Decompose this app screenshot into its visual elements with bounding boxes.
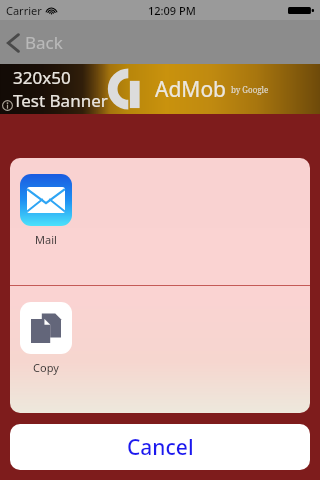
staticText: 12:09 PM bbox=[148, 3, 196, 18]
staticText: Back bbox=[25, 31, 63, 54]
button[interactable]: Cancel bbox=[10, 424, 310, 470]
button[interactable]: AdMob test banner advertisement bbox=[0, 64, 320, 114]
staticText: Copy bbox=[33, 360, 59, 375]
button[interactable]: Mail bbox=[10, 158, 310, 285]
staticText: Test Banner bbox=[13, 89, 108, 112]
staticText: Cancel bbox=[127, 433, 194, 462]
staticText: AdMob bbox=[155, 75, 227, 104]
staticText: Carrier bbox=[6, 3, 42, 18]
button[interactable]: Back bbox=[0, 25, 75, 60]
button[interactable]: Copy bbox=[10, 286, 310, 413]
staticText: Mail bbox=[35, 232, 57, 247]
staticText: 320x50 bbox=[13, 66, 71, 89]
staticText: by Google bbox=[231, 84, 269, 95]
